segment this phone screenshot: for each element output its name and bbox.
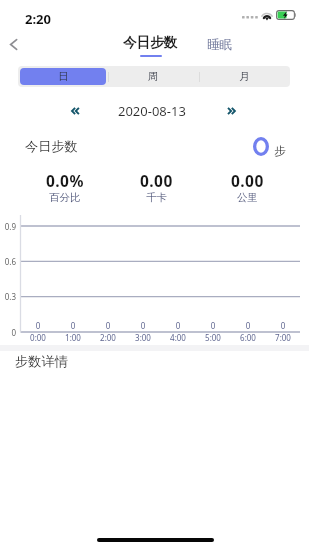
- button[interactable]: Next day: [219, 98, 245, 124]
- staticText: 今日步数: [123, 34, 178, 51]
- staticText: 0.0%: [46, 170, 84, 191]
- staticText: 步: [274, 144, 286, 158]
- staticText: 步数详情: [15, 353, 68, 370]
- button[interactable]: 睡眠: [203, 37, 237, 53]
- staticText: 0: [162, 320, 194, 331]
- button[interactable]: 日: [18, 66, 108, 87]
- staticText: 6:00: [232, 332, 264, 343]
- staticText: 3:00: [127, 332, 159, 343]
- staticText: 2:20: [25, 10, 51, 28]
- staticText: 公里: [237, 191, 258, 204]
- staticText: 0.6: [0, 256, 16, 267]
- staticText: 2:00: [92, 332, 124, 343]
- button[interactable]: 周: [108, 66, 199, 87]
- staticText: 日: [58, 70, 69, 83]
- staticText: 1:00: [57, 332, 89, 343]
- staticText: 0: [127, 320, 159, 331]
- staticText: 0: [57, 320, 89, 331]
- staticText: 0: [267, 320, 299, 331]
- button[interactable]: Previous day: [63, 98, 89, 124]
- staticText: 0:00: [22, 332, 54, 343]
- staticText: 0: [197, 320, 229, 331]
- staticText: 0: [0, 327, 16, 338]
- button[interactable]: 月: [199, 66, 290, 87]
- staticText: 5:00: [197, 332, 229, 343]
- staticText: 4:00: [162, 332, 194, 343]
- staticText: 0: [92, 320, 124, 331]
- staticText: 2020-08-13: [118, 102, 186, 120]
- staticText: 0.00: [140, 170, 173, 191]
- staticText: 0.9: [0, 221, 16, 232]
- staticText: 百分比: [49, 191, 81, 204]
- button[interactable]: 今日步数: [119, 34, 182, 57]
- staticText: 月: [239, 70, 250, 83]
- staticText: 睡眠: [207, 37, 233, 53]
- staticText: 0.00: [231, 170, 264, 191]
- staticText: 7:00: [267, 332, 299, 343]
- staticText: 0: [22, 320, 54, 331]
- staticText: 0: [232, 320, 264, 331]
- staticText: 今日步数: [25, 138, 78, 155]
- staticText: 千卡: [146, 191, 167, 204]
- staticText: 0.3: [0, 291, 16, 302]
- button[interactable]: Back: [0, 31, 26, 57]
- staticText: 周: [148, 70, 159, 83]
